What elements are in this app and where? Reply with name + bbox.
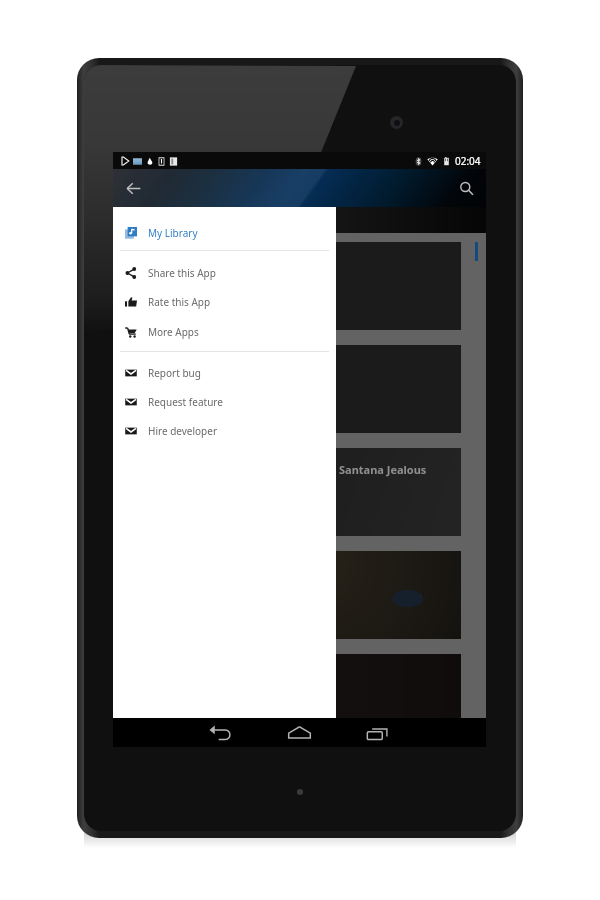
button[interactable]: Hire developer	[113, 416, 336, 445]
staticText: 02:04	[455, 154, 481, 168]
button[interactable]: My Library	[113, 218, 336, 247]
button[interactable]: Home	[284, 718, 314, 747]
staticText: Santana Jealous	[339, 462, 427, 477]
button[interactable]	[117, 345, 461, 433]
staticText: Report bug	[148, 366, 201, 380]
staticText: My Library	[148, 226, 198, 240]
staticText: Request feature	[148, 395, 223, 409]
staticText: Hire developer	[148, 424, 218, 438]
button[interactable]: Santana Jealous	[117, 448, 461, 536]
button[interactable]: Back	[205, 718, 235, 747]
button[interactable]: Rate this App	[113, 287, 336, 316]
button[interactable]: Back	[117, 172, 149, 204]
button[interactable]: Report bug	[113, 358, 336, 387]
staticText: Rate this App	[148, 295, 211, 309]
button[interactable]	[117, 551, 461, 639]
button[interactable]: Recent apps	[362, 718, 392, 747]
button[interactable]	[117, 242, 461, 330]
button[interactable]: Share this App	[113, 258, 336, 287]
button[interactable]: Search	[450, 172, 482, 204]
staticText: Share this App	[148, 266, 216, 280]
staticText: More Apps	[148, 325, 199, 339]
button[interactable]	[117, 654, 461, 718]
button[interactable]: Request feature	[113, 387, 336, 416]
button[interactable]: More Apps	[113, 317, 336, 346]
